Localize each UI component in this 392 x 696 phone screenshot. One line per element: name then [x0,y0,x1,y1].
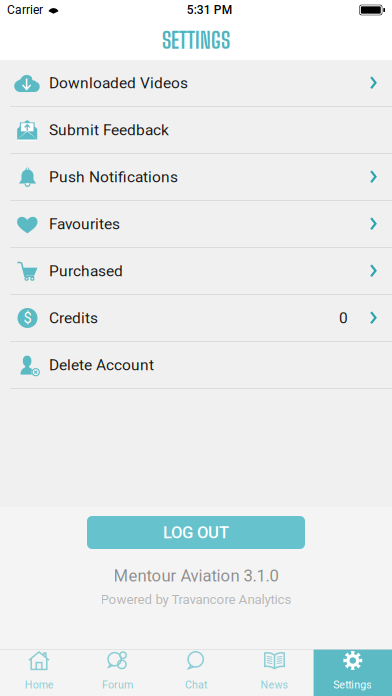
staticText: LOG OUT [163,523,229,542]
staticText: Forum [102,678,133,691]
staticText: Home [25,678,54,691]
staticText: Settings [333,678,372,691]
button[interactable]: $ [0,295,392,342]
staticText: 0 [339,309,348,327]
button[interactable]: Downloaded Videos [0,60,392,107]
button[interactable]: Submit Feedback [0,107,392,154]
button[interactable]: Settings [314,649,392,696]
staticText: Chat [185,678,207,691]
button[interactable]: Purchased [0,248,392,295]
staticText: Delete Account [49,356,154,374]
staticText: Push Notifications [49,168,178,186]
staticText: Downloaded Videos [49,74,188,92]
staticText: Credits [49,309,98,327]
staticText: SETTINGS [162,26,230,53]
staticText: Submit Feedback [49,121,169,139]
button[interactable]: Push Notifications [0,154,392,201]
staticText: Mentour Aviation 3.1.0 [113,566,278,585]
staticText: Purchased [49,262,123,280]
button[interactable]: News [235,649,314,696]
button[interactable]: Forum [78,649,157,696]
button[interactable]: Favourites [0,201,392,248]
button[interactable]: Home [0,649,78,696]
button[interactable]: Chat [157,649,235,696]
staticText: Powered by Travancore Analytics [100,591,291,607]
staticText: Carrier [7,3,43,17]
staticText: 5:31 PM [187,3,232,17]
staticText: News [260,678,288,691]
button[interactable]: Delete Account [0,342,392,389]
staticText: Favourites [49,215,120,233]
button[interactable]: LOG OUT [87,516,305,549]
staticText: $ [23,309,31,327]
